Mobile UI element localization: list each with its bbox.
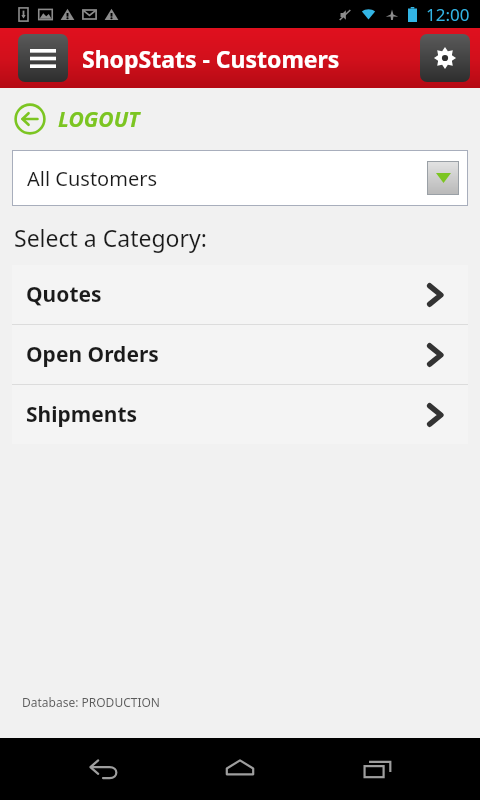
button[interactable]: LOGOUT [0, 88, 480, 150]
button[interactable]: Open Orders [12, 325, 468, 384]
button[interactable]: Recent apps [343, 738, 413, 800]
staticText: Open Orders [26, 340, 159, 369]
button[interactable]: Shipments [12, 385, 468, 444]
button[interactable]: Home [205, 738, 275, 800]
staticText: Quotes [26, 280, 102, 309]
staticText: Database: PRODUCTION [22, 694, 160, 710]
staticText: LOGOUT [58, 105, 140, 134]
staticText: All Customers [27, 165, 158, 192]
button[interactable]: Menu [18, 34, 68, 82]
button[interactable]: Back [68, 738, 138, 800]
button[interactable]: All Customers [13, 151, 467, 205]
staticText: 12:00 [426, 3, 470, 26]
button[interactable]: Quotes [12, 265, 468, 324]
staticText: Shipments [26, 400, 138, 429]
staticText: ShopStats - Customers [82, 43, 340, 74]
button[interactable]: Settings [420, 34, 470, 82]
staticText: Select a Category: [14, 222, 207, 253]
